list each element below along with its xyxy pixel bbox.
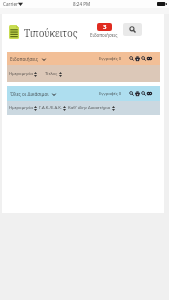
button[interactable]: 3	[90, 23, 118, 38]
staticText: Εγγραφές 0	[99, 91, 122, 97]
staticText: Τιπούκειτος	[24, 26, 78, 40]
button[interactable]: Link	[147, 56, 152, 61]
button[interactable]: Link	[147, 91, 152, 96]
button[interactable]: Search records	[129, 56, 134, 61]
staticText: Carrier	[3, 1, 18, 7]
button[interactable]: Όλες οι Δικάσιμοι	[10, 91, 56, 97]
staticText: Ειδοποιήσεις	[90, 32, 118, 38]
staticText: Καθ' ύλην Δικαστήριο	[68, 105, 111, 111]
button[interactable]: Ημερομηνία	[9, 105, 37, 111]
button[interactable]: Print	[135, 91, 140, 96]
staticText: Γ.Α.Κ./Ε.Α.Κ.	[39, 105, 62, 111]
staticText: 3	[103, 23, 107, 31]
button[interactable]: Zoom	[141, 91, 146, 96]
button[interactable]: Ειδοποιήσεις	[10, 56, 46, 62]
button[interactable]: Ημερομηνία	[9, 71, 37, 77]
staticText: Τίτλος	[45, 71, 58, 77]
button[interactable]: Print	[135, 56, 140, 61]
staticText: Ειδοποιήσεις	[10, 56, 39, 62]
staticText: Όλες οι Δικάσιμοι	[10, 91, 49, 97]
button[interactable]: Τίτλος	[45, 71, 62, 77]
button[interactable]: Search records	[129, 91, 134, 96]
staticText: Ημερομηνία	[9, 105, 33, 111]
button[interactable]: Γ.Α.Κ./Ε.Α.Κ.	[39, 105, 66, 111]
staticText: Εγγραφές 0	[99, 56, 122, 62]
staticText: 8:24 PM	[73, 1, 91, 7]
button[interactable]: Search	[123, 23, 142, 36]
staticText: Ημερομηνία	[9, 71, 33, 77]
button[interactable]: Zoom	[141, 56, 146, 61]
button[interactable]: Καθ' ύλην Δικαστήριο	[68, 105, 115, 111]
